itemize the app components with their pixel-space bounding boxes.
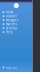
button[interactable]: Settings (0, 26, 32, 30)
button[interactable]: Favorites (0, 22, 32, 26)
button[interactable]: Discover (0, 14, 32, 18)
staticText: Discover (6, 14, 17, 18)
button[interactable]: Messages (0, 18, 32, 22)
staticText: Messages (6, 18, 18, 22)
staticText: Home (6, 10, 14, 14)
staticText: Settings (6, 26, 17, 30)
button[interactable]: Home (0, 10, 32, 14)
button[interactable]: Help (0, 30, 32, 34)
staticText: Help (6, 30, 13, 34)
staticText: Favorites (6, 22, 17, 26)
staticText: Log out (6, 66, 17, 69)
button[interactable]: Log out (0, 65, 32, 69)
